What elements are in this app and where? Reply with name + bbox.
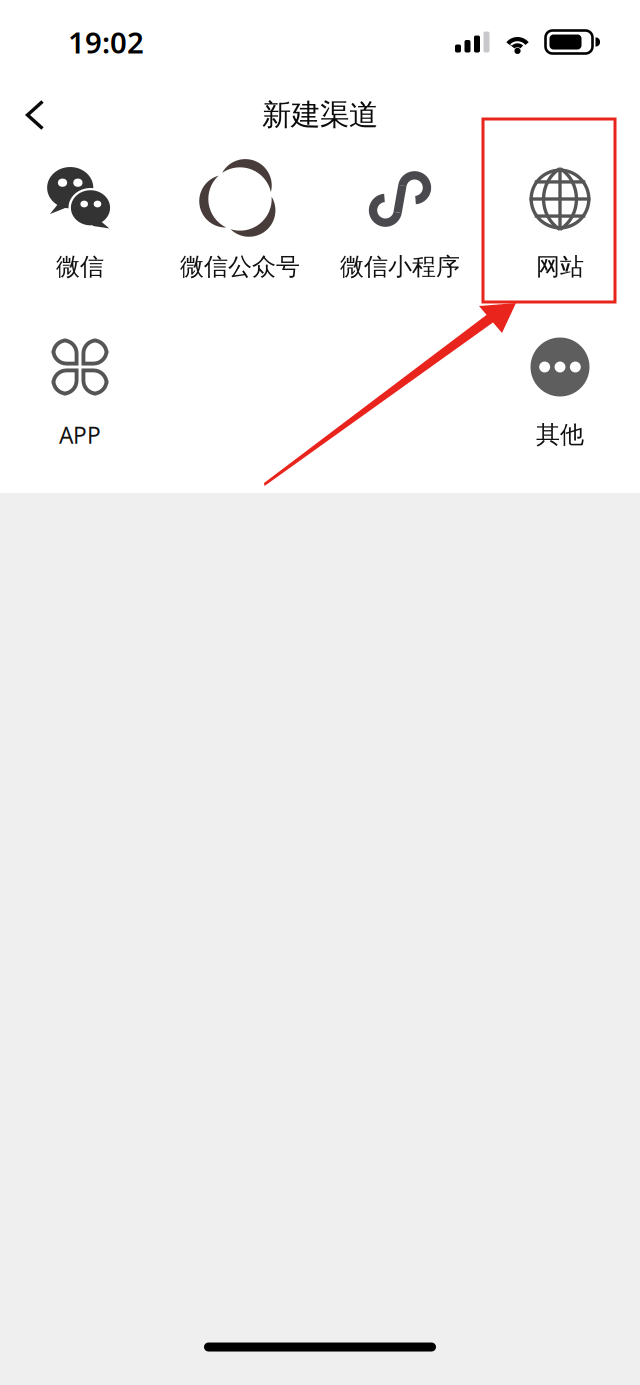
staticText: APP — [59, 420, 101, 450]
button[interactable]: Back — [6, 86, 64, 144]
button[interactable]: Home indicator — [155, 1325, 485, 1369]
staticText: 网站 — [536, 252, 584, 281]
button[interactable]: 微信小程序 — [320, 146, 480, 314]
staticText: 19:02 — [68, 22, 144, 61]
button[interactable]: 微信公众号 — [160, 146, 320, 314]
button[interactable]: 微信 — [0, 146, 160, 314]
button[interactable]: APP — [0, 314, 160, 482]
staticText: 其他 — [536, 420, 584, 449]
staticText: 微信 — [56, 252, 104, 281]
staticText: 微信小程序 — [340, 252, 460, 281]
staticText: 微信公众号 — [180, 252, 300, 281]
staticText: 新建渠道 — [262, 97, 378, 133]
button[interactable]: 其他 — [480, 314, 640, 482]
button[interactable]: 网站 — [480, 146, 640, 314]
